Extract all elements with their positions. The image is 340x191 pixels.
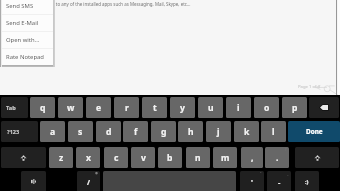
button[interactable]: Open with... (0, 32, 54, 48)
button[interactable]: x (76, 147, 100, 168)
staticText: n (195, 152, 201, 164)
button[interactable]: i (226, 97, 251, 118)
staticText: You can share the note to any of the ins… (7, 1, 191, 7)
button[interactable]: a (40, 121, 65, 142)
staticText: x (86, 152, 91, 164)
staticText: _ (287, 171, 289, 176)
staticText: a (50, 126, 56, 138)
button[interactable]: Done (288, 121, 340, 142)
staticText: j (217, 126, 220, 138)
staticText: u (208, 102, 214, 114)
staticText: l (272, 126, 275, 138)
button[interactable]: ' (240, 171, 264, 191)
staticText: Done (306, 127, 323, 136)
staticText: o (264, 102, 270, 114)
button[interactable]: c (104, 147, 128, 168)
button[interactable]: p (282, 97, 307, 118)
button[interactable]: v (131, 147, 155, 168)
button[interactable]: z (49, 147, 73, 168)
staticText: r (125, 102, 129, 114)
staticText: d (106, 126, 112, 138)
button[interactable]: e (86, 97, 111, 118)
button[interactable]: o (254, 97, 279, 118)
staticText: k (244, 126, 250, 138)
button[interactable]: h (178, 121, 203, 142)
staticText: z (59, 152, 64, 164)
staticText: y (180, 102, 185, 114)
staticText: h (188, 126, 194, 138)
button[interactable]: Backspace (309, 97, 339, 118)
staticText: " (260, 171, 262, 176)
staticText: b (167, 152, 173, 164)
button[interactable]: . (265, 147, 289, 168)
staticText: p (292, 102, 298, 114)
staticText: Tab (6, 104, 16, 112)
button[interactable]: ?123 (1, 121, 38, 142)
button[interactable]: m (213, 147, 237, 168)
button[interactable]: t (142, 97, 167, 118)
staticText: q (40, 102, 46, 114)
button[interactable]: r (114, 97, 139, 118)
button[interactable]: f (123, 121, 148, 142)
button[interactable]: k (234, 121, 259, 142)
button[interactable]: Voice input (21, 171, 46, 191)
staticText: Rate Notepad (6, 53, 44, 61)
staticText: / (87, 177, 91, 187)
button[interactable]: s (68, 121, 93, 142)
staticText: , (251, 152, 254, 164)
button[interactable]: Tab (1, 97, 28, 118)
button[interactable]: :) (295, 171, 319, 191)
staticText: Page 1 of 4 (298, 84, 320, 90)
staticText: :) (305, 178, 309, 186)
button[interactable]: b (158, 147, 182, 168)
button[interactable]: - (267, 171, 291, 191)
staticText: f (134, 126, 138, 138)
staticText: ' (251, 177, 253, 187)
staticText: Send E-Mail (6, 19, 39, 27)
button[interactable]: / (77, 171, 100, 191)
staticText: e (96, 102, 102, 114)
button[interactable]: y (170, 97, 195, 118)
button[interactable]: q (30, 97, 55, 118)
staticText: Send SMS (6, 2, 34, 10)
button[interactable]: w (58, 97, 83, 118)
staticText: s (78, 126, 83, 138)
button[interactable]: Rate Notepad (0, 49, 54, 65)
staticText: - (278, 177, 281, 187)
button[interactable]: l (261, 121, 286, 142)
button[interactable]: Shift (295, 147, 339, 168)
staticText: w (67, 102, 75, 114)
staticText: t (153, 102, 157, 114)
staticText: v (141, 152, 146, 164)
staticText: g (161, 126, 167, 138)
staticText: . (276, 152, 279, 164)
button[interactable]: n (186, 147, 210, 168)
staticText: c (114, 152, 119, 164)
button[interactable]: Send SMS (0, 0, 54, 14)
staticText: ?123 (7, 128, 20, 136)
staticText: ● (95, 171, 98, 175)
staticText: i (237, 102, 240, 114)
staticText: Open with... (6, 36, 40, 44)
button[interactable]: g (151, 121, 176, 142)
button[interactable]: d (96, 121, 121, 142)
button[interactable]: j (206, 121, 231, 142)
button[interactable]: u (198, 97, 223, 118)
button[interactable]: Send E-Mail (0, 15, 54, 31)
button[interactable]: Shift (1, 147, 46, 168)
button[interactable]: , (241, 147, 263, 168)
staticText: m (221, 152, 230, 164)
